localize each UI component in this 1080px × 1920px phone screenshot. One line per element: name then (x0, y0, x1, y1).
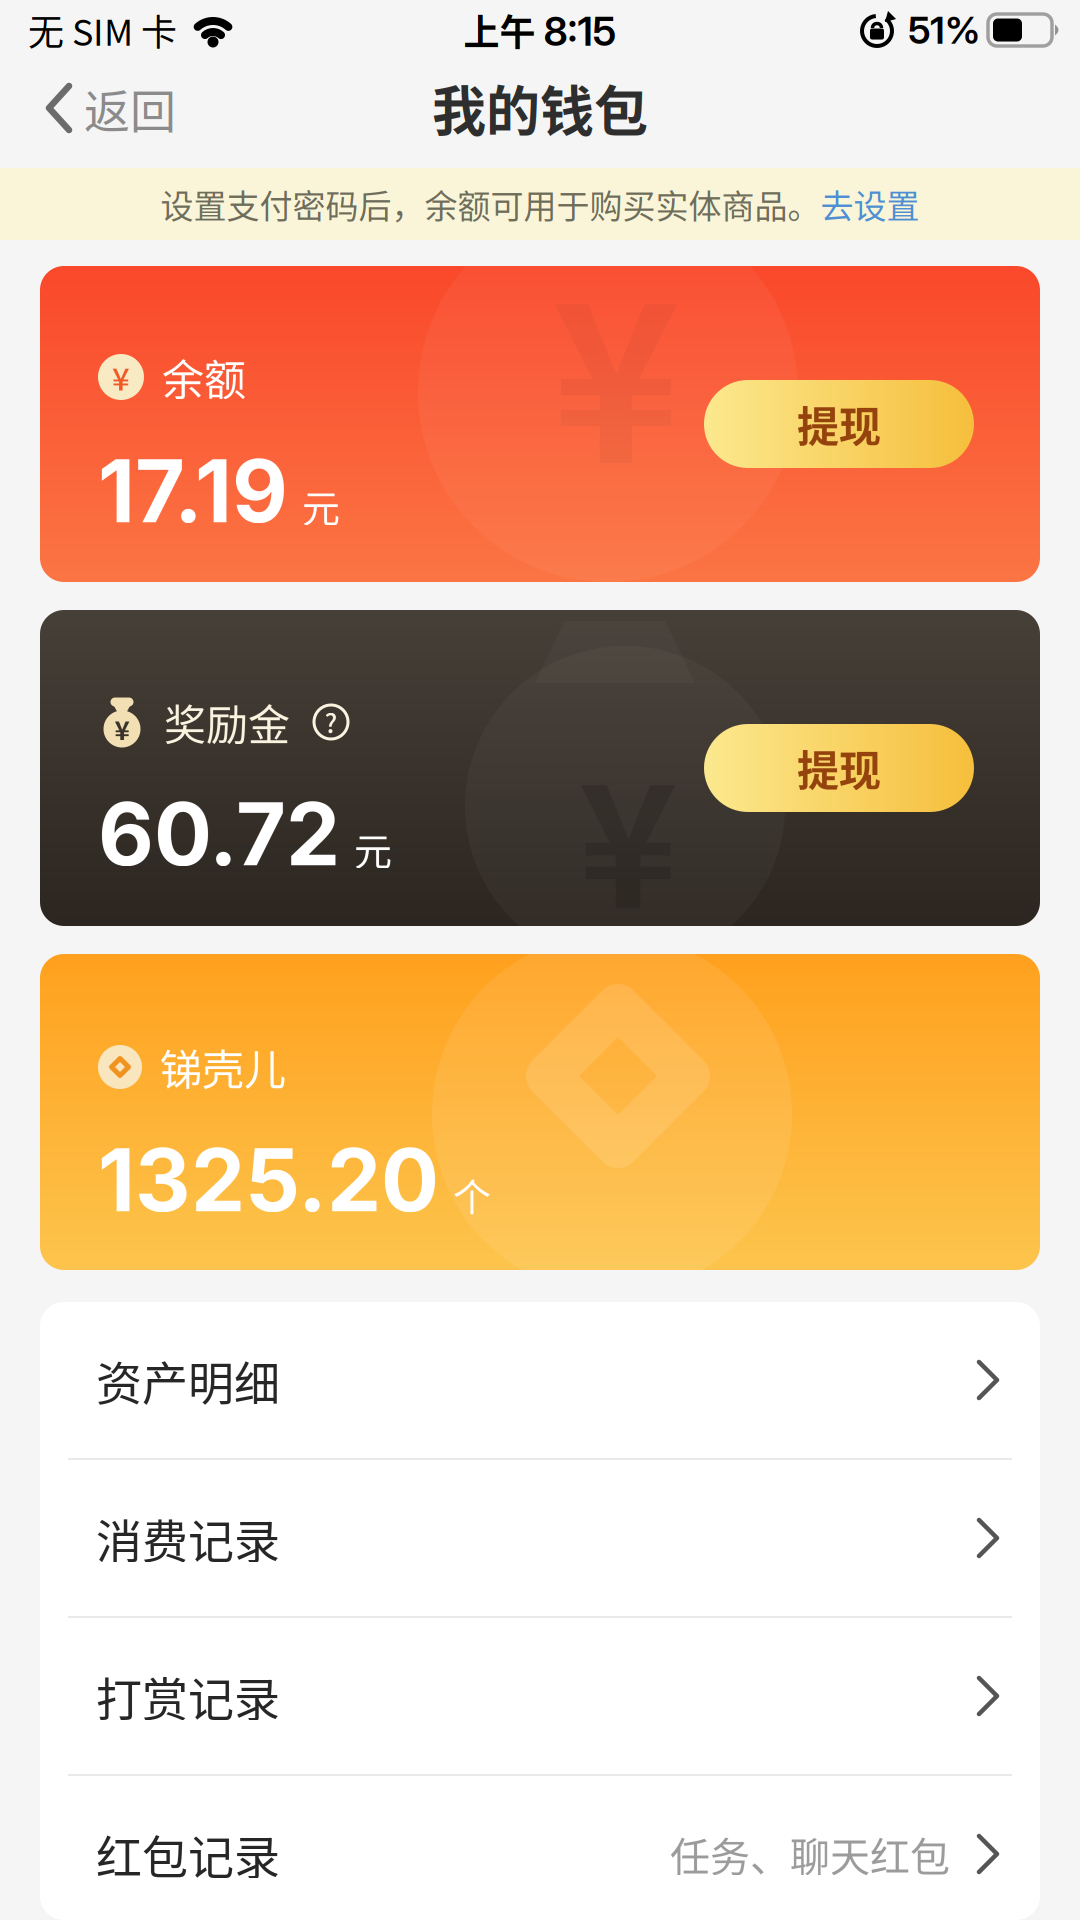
button[interactable]: 消费记录 (40, 1460, 1040, 1616)
staticText: 任务、聊天红包 (670, 1825, 950, 1883)
staticText: 我的钱包 (432, 69, 648, 147)
staticText: 1325.20 (98, 1128, 439, 1232)
staticText: 51% (908, 7, 980, 53)
staticText: ¥ (114, 710, 129, 748)
staticText: 60.72 (98, 782, 340, 886)
staticText: 返回 (84, 75, 176, 141)
button[interactable]: 提现 (704, 380, 974, 468)
staticText: 提现 (797, 738, 881, 798)
button[interactable]: 返回 (44, 75, 176, 141)
button[interactable]: 去设置 (820, 180, 919, 228)
staticText: 余额 (162, 347, 246, 407)
staticText: ¥ (578, 711, 678, 957)
staticText: 个 (453, 1167, 491, 1222)
button[interactable]: 资产明细 (40, 1302, 1040, 1458)
button[interactable]: 奖励金说明 (314, 703, 348, 741)
staticText: ¥ (551, 208, 681, 526)
staticText: 去设置 (820, 180, 919, 228)
staticText: ¥ (112, 355, 130, 399)
staticText: 设置支付密码后，余额可用于购买实体商品。 (160, 180, 820, 228)
staticText: 锑壳儿 (160, 1037, 286, 1097)
staticText: 8:15 (543, 7, 616, 55)
staticText: 提现 (797, 394, 881, 454)
staticText: 奖励金 (164, 692, 290, 752)
staticText: 元 (302, 478, 340, 533)
staticText: 红包记录 (96, 1821, 280, 1887)
staticText: 上午 (463, 4, 535, 56)
staticText: 元 (354, 821, 392, 876)
button[interactable]: 红包记录 (40, 1776, 1040, 1920)
staticText: 17.19 (98, 439, 288, 543)
button[interactable]: 打赏记录 (40, 1618, 1040, 1774)
staticText: 打赏记录 (96, 1663, 280, 1729)
staticText: 无 SIM 卡 (28, 4, 177, 56)
button[interactable]: 提现 (704, 724, 974, 812)
staticText: 消费记录 (96, 1505, 280, 1571)
staticText: 资产明细 (96, 1347, 280, 1413)
staticText: ? (324, 703, 337, 741)
